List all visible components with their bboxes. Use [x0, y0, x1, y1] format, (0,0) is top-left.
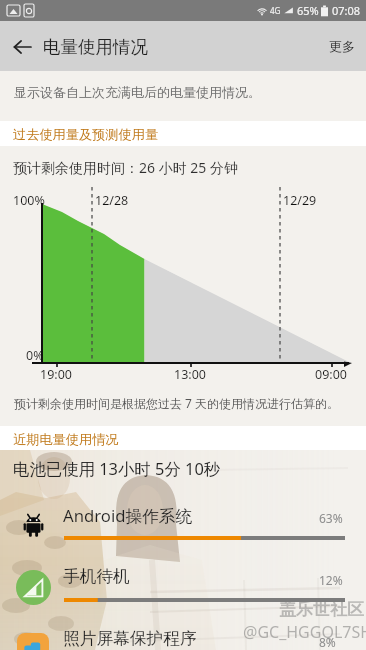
staticText: 07:08	[332, 3, 361, 18]
staticText: 近期电量使用情况	[13, 431, 119, 448]
staticText: 预计剩余使用时间：26 小时 25 分钟	[13, 158, 238, 177]
staticText: 更多	[329, 38, 355, 54]
staticText: 12/29	[283, 192, 317, 209]
staticText: 过去使用量及预测使用量	[13, 126, 159, 143]
staticText: 12%	[319, 572, 343, 588]
button[interactable]: 照片屏幕保护程序	[0, 618, 366, 650]
staticText: 盖乐世社区	[279, 599, 364, 620]
staticText: 手机待机	[63, 566, 130, 587]
button[interactable]: 更多	[318, 25, 366, 67]
staticText: 4G	[270, 5, 281, 16]
staticText: 65%	[297, 3, 319, 18]
staticText: 09:00	[315, 366, 347, 383]
staticText: 0%	[26, 347, 44, 364]
staticText: 100%	[13, 192, 45, 209]
staticText: 电池已使用 13小时 5分 10秒	[13, 457, 221, 479]
staticText: @GC_HGGQL7SH	[243, 621, 366, 643]
staticText: 13:00	[174, 366, 206, 383]
staticText: 显示设备自上次充满电后的电量使用情况。	[14, 84, 261, 100]
staticText: 12/28	[95, 192, 129, 209]
staticText: Android操作系统	[63, 504, 193, 527]
staticText: 63%	[319, 510, 343, 526]
staticText: 19:00	[40, 366, 72, 383]
button[interactable]: Android操作系统	[0, 494, 366, 556]
button[interactable]: Back	[0, 22, 44, 71]
staticText: 预计剩余使用时间是根据您过去 7 天的使用情况进行估算的。	[14, 395, 340, 411]
button[interactable]: 手机待机	[0, 556, 366, 618]
staticText: 照片屏幕保护程序	[63, 628, 197, 649]
staticText: 8%	[319, 634, 336, 650]
staticText: 电量使用情况	[43, 36, 148, 58]
